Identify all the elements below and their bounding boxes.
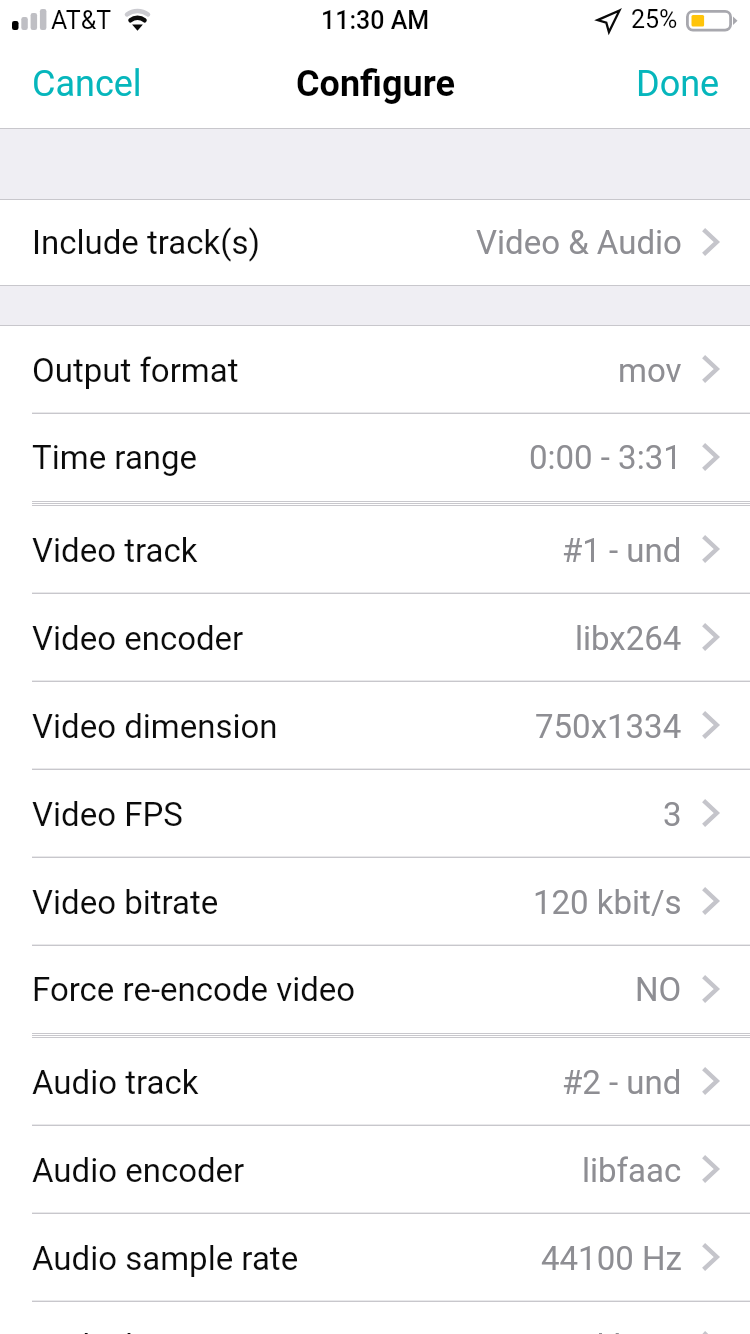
staticText: 25% <box>631 5 678 34</box>
button[interactable]: Video FPS <box>0 770 750 858</box>
staticText: 127 kbit/s <box>533 1327 682 1334</box>
staticText: mov <box>618 351 682 390</box>
staticText: 11:30 AM <box>321 6 430 35</box>
button[interactable]: Audio track <box>0 1038 750 1126</box>
staticText: Audio track <box>32 1063 199 1102</box>
staticText: 120 kbit/s <box>533 883 682 922</box>
staticText: AT&T <box>51 6 112 35</box>
staticText: Video FPS <box>32 795 183 834</box>
button[interactable]: Cancel <box>0 45 166 123</box>
staticText: Video track <box>32 531 198 570</box>
staticText: Include track(s) <box>32 223 261 262</box>
staticText: Video bitrate <box>32 883 219 922</box>
staticText: Audio encoder <box>32 1151 245 1190</box>
button[interactable]: Force re-encode video <box>0 946 750 1033</box>
button[interactable]: Audio bitrate <box>0 1302 750 1334</box>
staticText: Video dimension <box>32 707 278 746</box>
button[interactable]: Done <box>612 45 750 123</box>
staticText: Configure <box>296 63 455 105</box>
staticText: 0:00 - 3:31 <box>529 438 682 477</box>
button[interactable]: Time range <box>0 414 750 501</box>
staticText: #1 - und <box>562 531 682 570</box>
staticText: 750x1334 <box>535 707 682 746</box>
button[interactable]: Output format <box>0 326 750 414</box>
button[interactable]: Video bitrate <box>0 858 750 946</box>
staticText: Cancel <box>32 63 142 105</box>
staticText: Video encoder <box>32 619 244 658</box>
staticText: Force re-encode video <box>32 970 356 1009</box>
staticText: Output format <box>32 351 239 390</box>
staticText: Audio sample rate <box>32 1239 299 1278</box>
staticText: #2 - und <box>562 1063 682 1102</box>
staticText: Video & Audio <box>476 223 682 262</box>
staticText: libfaac <box>582 1151 682 1190</box>
staticText: 3 <box>663 795 682 834</box>
staticText: NO <box>635 970 682 1009</box>
button[interactable]: Video track <box>0 506 750 594</box>
staticText: libx264 <box>575 619 682 658</box>
staticText: Audio bitrate <box>32 1327 220 1334</box>
button[interactable]: Audio encoder <box>0 1126 750 1214</box>
staticText: 44100 Hz <box>541 1239 682 1278</box>
button[interactable]: Video dimension <box>0 682 750 770</box>
button[interactable]: Include track(s) <box>0 200 750 285</box>
button[interactable]: Video encoder <box>0 594 750 682</box>
staticText: Time range <box>32 438 198 477</box>
button[interactable]: Audio sample rate <box>0 1214 750 1302</box>
staticText: Done <box>636 63 720 105</box>
